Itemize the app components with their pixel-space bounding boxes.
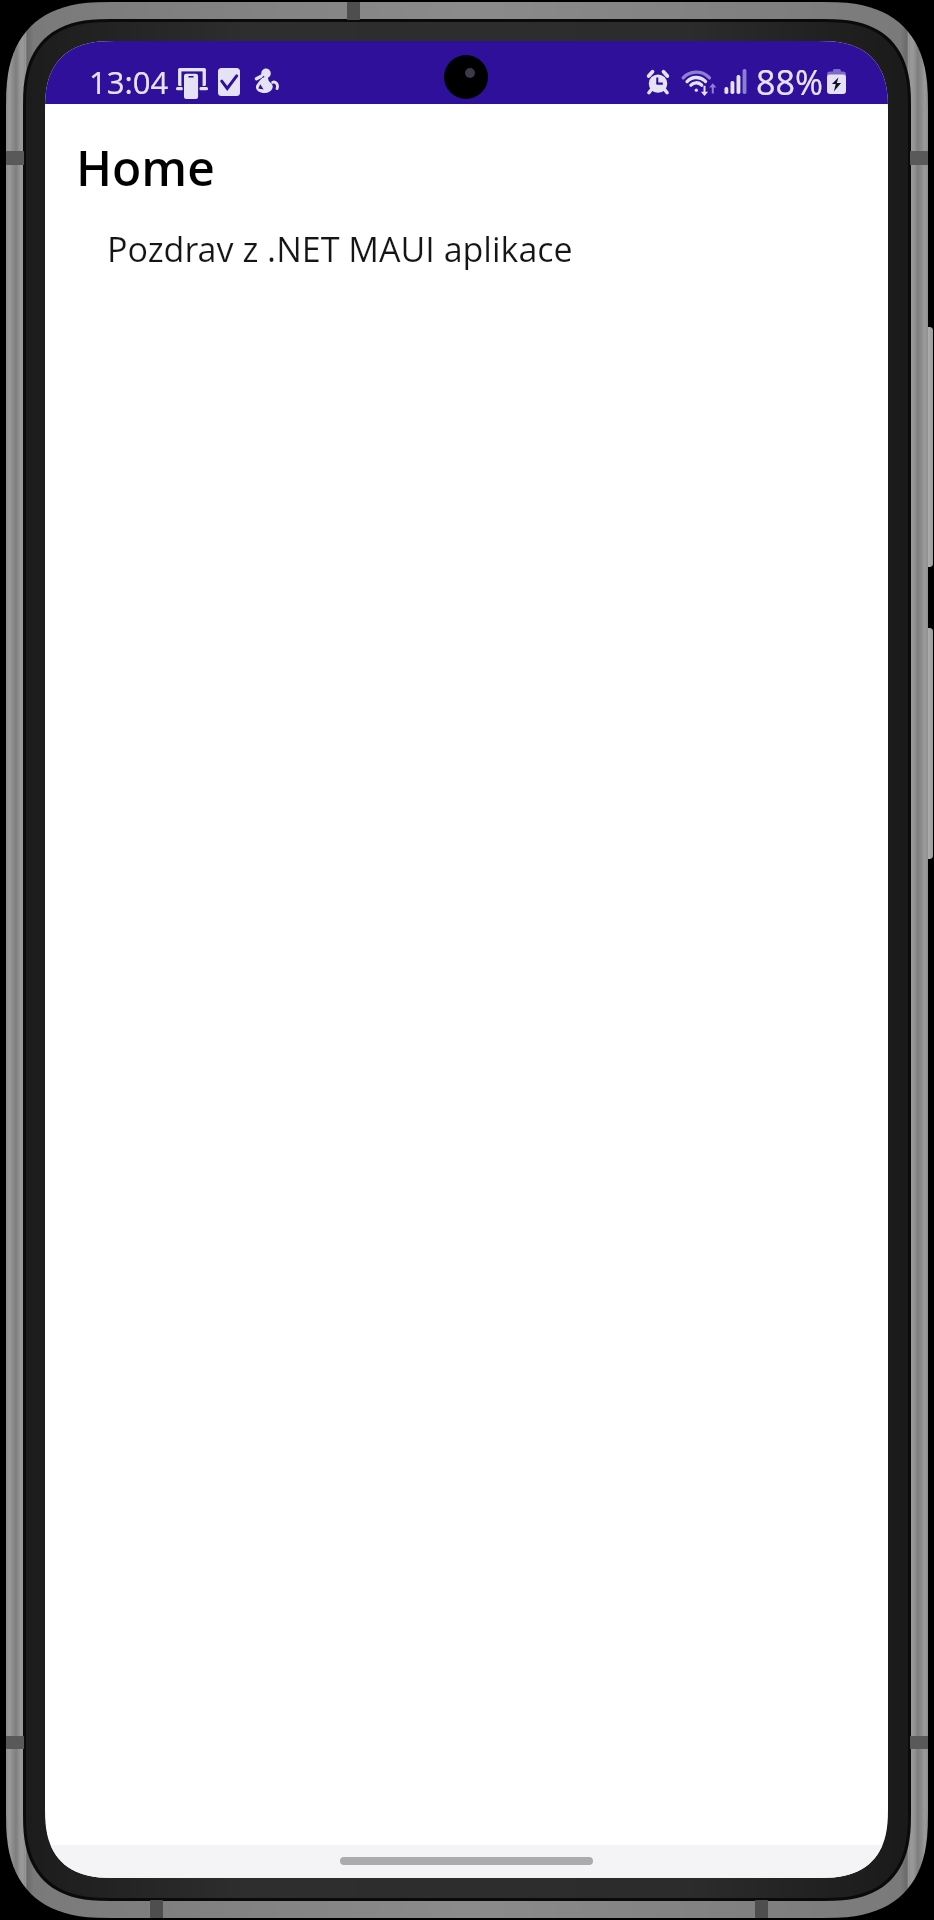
other: Home gesture bar	[340, 1857, 593, 1865]
staticText: Home	[76, 135, 215, 200]
staticText: 88%	[756, 59, 823, 104]
staticText: 13:04	[89, 61, 169, 103]
staticText: Pozdrav z .NET MAUI aplikace	[107, 226, 573, 272]
